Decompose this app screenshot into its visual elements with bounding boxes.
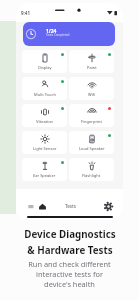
button[interactable]: Display — [22, 50, 67, 73]
staticText: 1/24 — [46, 28, 57, 35]
button[interactable]: Settings — [104, 202, 113, 211]
staticText: Tests Completed — [46, 33, 70, 37]
button[interactable]: Light Sensor — [22, 131, 67, 154]
button[interactable]: Wifi — [69, 77, 114, 100]
button[interactable]: Menu — [28, 204, 34, 209]
button[interactable]: Fingerprint — [69, 104, 114, 127]
staticText: Run and check different interactive test… — [28, 259, 111, 289]
button[interactable]: Flashlight — [69, 158, 114, 181]
staticText: Fingerprint — [81, 119, 103, 124]
staticText: Ear Speaker — [33, 173, 56, 178]
staticText: Vibration — [36, 119, 54, 124]
staticText: 9:41 — [21, 10, 30, 16]
staticText: Multi Touch — [34, 92, 56, 97]
button[interactable]: Multi Touch — [22, 77, 67, 100]
button[interactable]: Home — [38, 202, 47, 211]
button[interactable]: Vibration — [22, 104, 67, 127]
staticText: Wifi — [88, 92, 96, 97]
staticText: Tests — [65, 203, 76, 209]
staticText: Display — [38, 65, 52, 70]
staticText: Light Sensor — [33, 146, 57, 151]
button[interactable]: 1/24 — [23, 22, 115, 46]
button[interactable]: Paint — [69, 50, 114, 73]
button[interactable]: Loud Speaker — [69, 131, 114, 154]
button[interactable]: Ear Speaker — [22, 158, 67, 181]
staticText: Device Diagnostics & Hardware Tests — [24, 228, 116, 257]
staticText: Flashlight — [82, 173, 101, 178]
staticText: Paint — [87, 65, 97, 70]
staticText: Loud Speaker — [79, 146, 105, 151]
